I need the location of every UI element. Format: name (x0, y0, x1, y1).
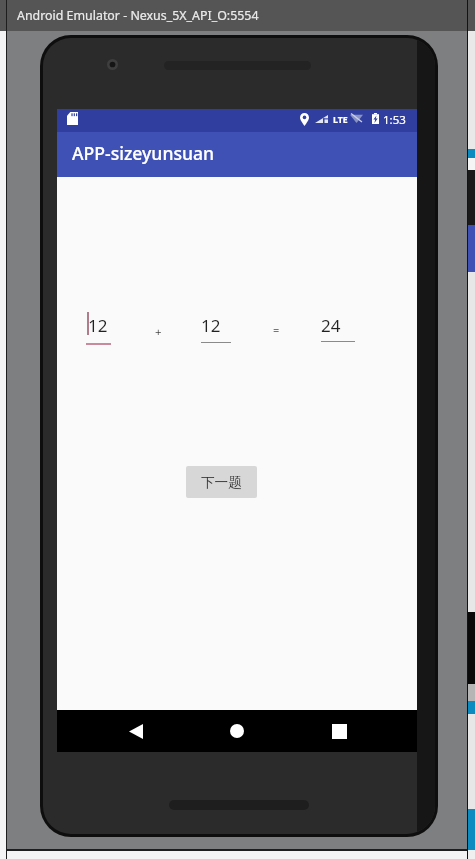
staticText: Android Emulator - Nexus_5X_API_O:5554 (17, 7, 259, 24)
button[interactable]: 24 (320, 307, 356, 349)
button[interactable]: 12 (84, 307, 112, 349)
button[interactable]: Home (207, 710, 267, 752)
button[interactable]: 下一题 (186, 466, 257, 498)
button[interactable]: Back (106, 710, 166, 752)
staticText: 1:53 (383, 112, 406, 128)
staticText: 12 (201, 314, 221, 337)
staticText: 24 (321, 314, 341, 337)
staticText: = (273, 322, 280, 337)
staticText: 下一题 (201, 474, 242, 491)
staticText: + (155, 324, 162, 340)
staticText: 12 (88, 314, 108, 337)
button[interactable]: Recents (309, 710, 369, 752)
button[interactable]: 12 (200, 307, 232, 349)
staticText: APP-sizeyunsuan (72, 141, 215, 165)
staticText: LTE (333, 114, 348, 126)
